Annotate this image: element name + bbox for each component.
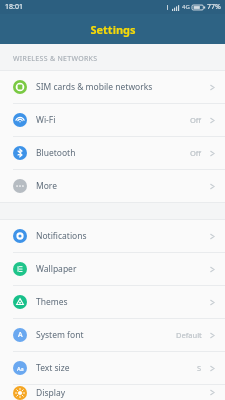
button[interactable]: Wallpaper [0,253,225,285]
staticText: System font [36,329,84,341]
other: Wi-Fi [13,113,27,127]
staticText: Off [190,115,202,125]
other: Wallpaper [13,262,27,276]
staticText: Off [190,148,202,158]
staticText: WIRELESS & NETWORKS [13,54,98,64]
staticText: More [36,180,57,192]
button[interactable]: More [0,170,225,202]
staticText: Themes [36,296,68,308]
staticText: 4G [182,3,190,11]
staticText: 77% [207,2,221,12]
staticText: Text size [36,362,70,374]
staticText: Aa [17,365,24,372]
button[interactable]: Wi-Fi [0,104,225,136]
staticText: Bluetooth [36,147,76,159]
staticText: SIM cards & mobile networks [36,81,153,93]
staticText: 18:01 [5,2,23,12]
other: Display [13,386,27,400]
other: Notifications [13,229,27,243]
staticText: Notifications [36,230,87,242]
staticText: Wi-Fi [36,114,56,126]
other: SIM cards [13,80,27,94]
staticText: Wallpaper [36,263,77,275]
other: Themes [13,295,27,309]
staticText: A [18,330,23,340]
button[interactable]: Aa [0,352,225,384]
button[interactable]: Notifications [0,220,225,252]
button[interactable]: Themes [0,286,225,318]
staticText: Default [176,330,202,340]
staticText: Display [36,387,65,399]
other: More [13,179,27,193]
button[interactable]: Display [0,385,225,400]
button[interactable]: A [0,319,225,351]
staticText: Settings [90,22,136,37]
button[interactable]: Bluetooth [0,137,225,169]
staticText: S [197,363,202,373]
other: Bluetooth [13,146,27,160]
button[interactable]: SIM cards [0,71,225,103]
